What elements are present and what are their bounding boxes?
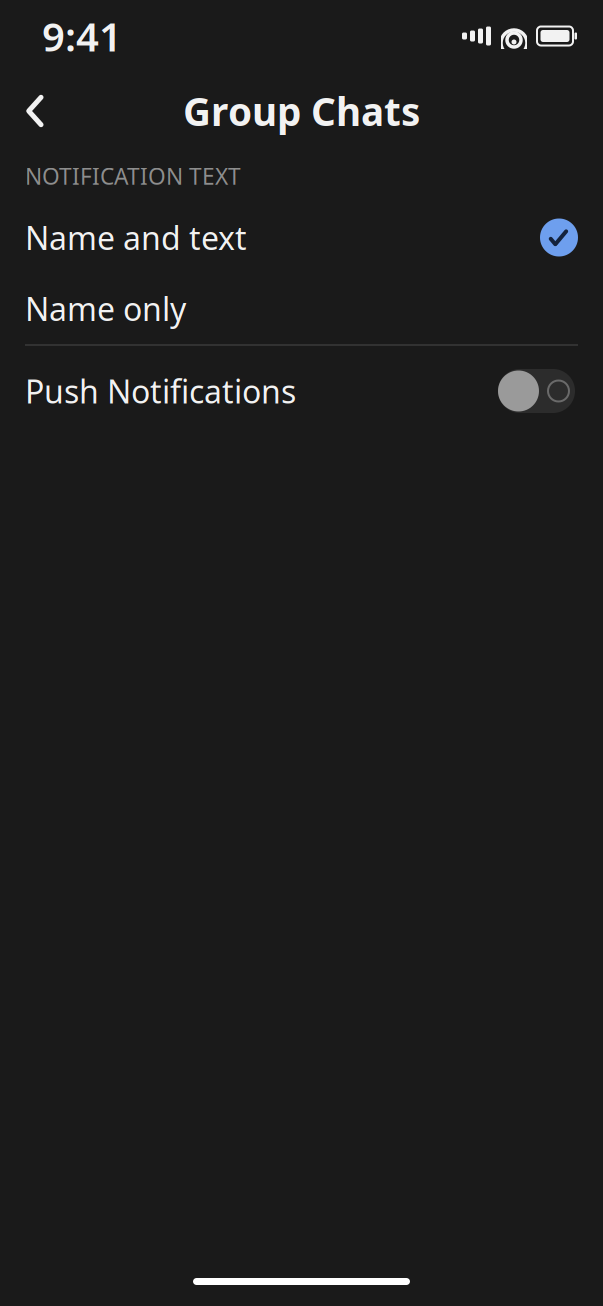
button[interactable]: Back <box>6 80 64 142</box>
staticText: 9:41 <box>42 9 122 62</box>
button[interactable]: Name only <box>0 273 603 344</box>
staticText: Name only <box>25 287 186 330</box>
button[interactable]: Name and text <box>0 202 603 273</box>
button[interactable]: Push Notifications <box>0 346 603 436</box>
staticText: Push Notifications <box>25 370 296 412</box>
staticText: Name and text <box>25 216 247 259</box>
staticText: Group Chats <box>183 85 420 137</box>
staticText: NOTIFICATION TEXT <box>25 161 241 191</box>
